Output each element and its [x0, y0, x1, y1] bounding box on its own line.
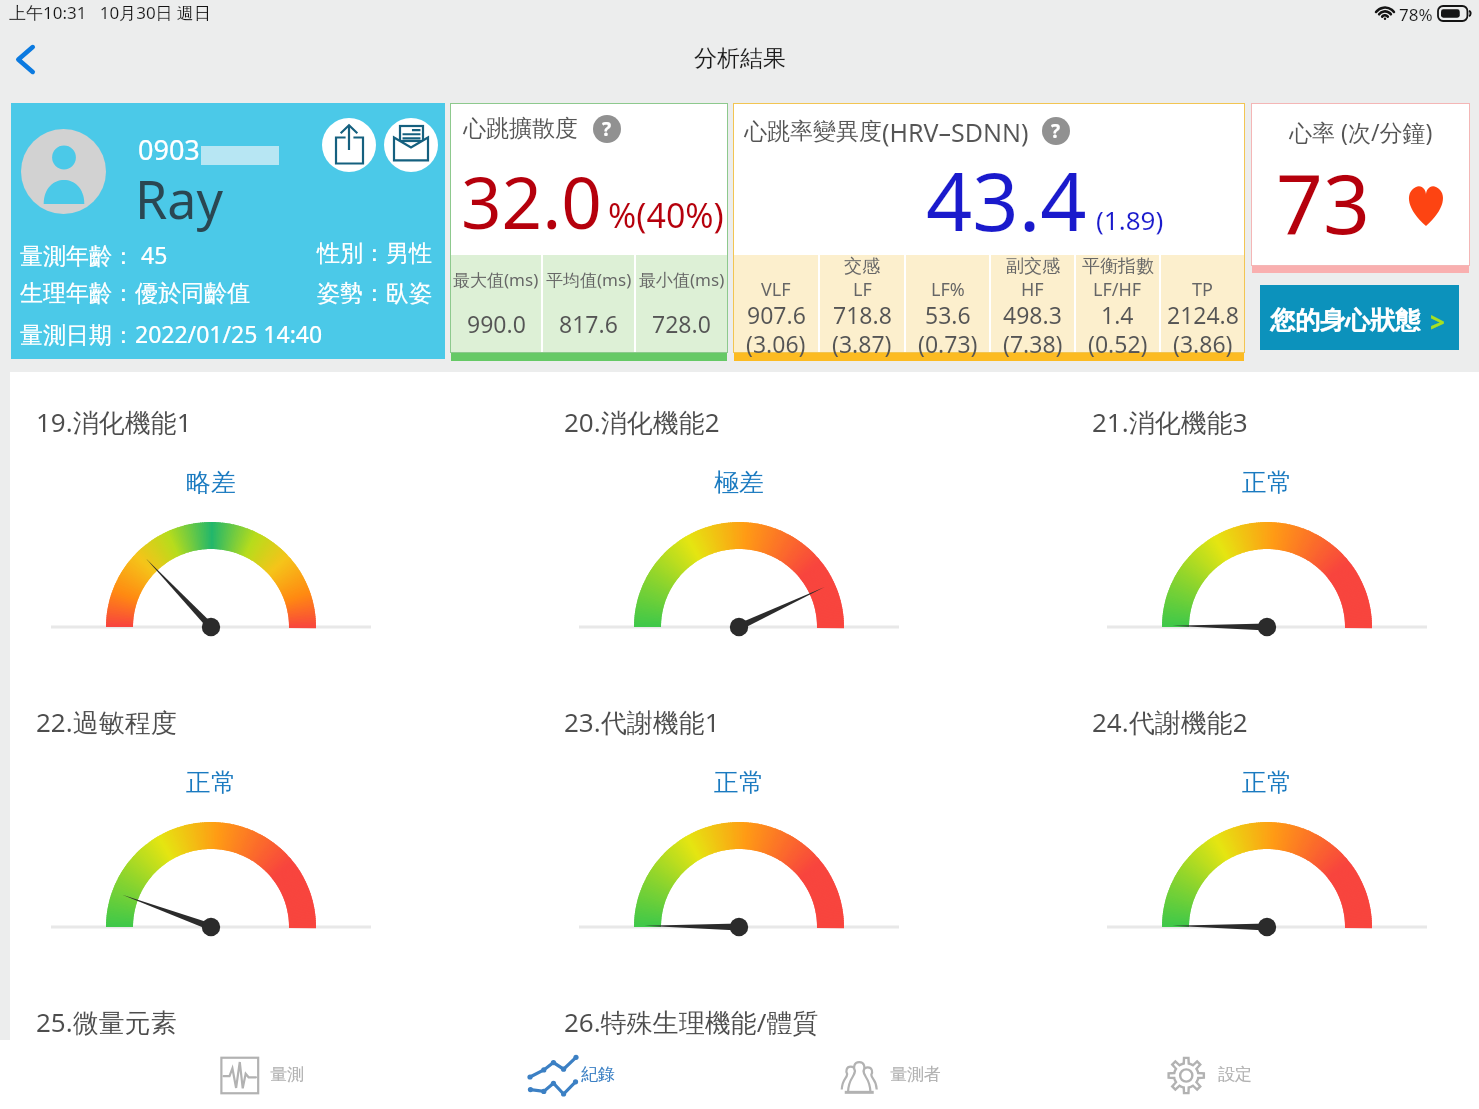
- button[interactable]: Help: [593, 115, 621, 143]
- staticText: 21.消化機能3: [1092, 404, 1248, 440]
- staticText: 990.0: [467, 308, 526, 339]
- staticText: 略差: [186, 467, 236, 498]
- button[interactable]: 24.代謝機能2: [1066, 672, 1479, 972]
- staticText: (1.89): [1096, 202, 1164, 237]
- staticText: 交感: [844, 255, 880, 278]
- staticText: 26.特殊生理機能/體質: [564, 1004, 819, 1040]
- staticText: 22.過敏程度: [36, 704, 177, 740]
- staticText: 性別：男性: [317, 239, 432, 268]
- staticText: 正常: [714, 767, 764, 798]
- staticText: (0.52): [1088, 328, 1148, 359]
- staticText: 1.4: [1101, 299, 1134, 330]
- staticText: >: [1430, 304, 1445, 339]
- staticText: 極差: [714, 467, 764, 498]
- staticText: 分析結果: [694, 44, 786, 73]
- button[interactable]: 20.消化機能2: [538, 372, 1066, 672]
- button[interactable]: 量測: [206, 1040, 319, 1109]
- staticText: LF/HF: [1093, 277, 1142, 302]
- button[interactable]: Email report: [384, 118, 438, 172]
- staticText: (3.87): [832, 328, 892, 359]
- staticText: 2124.8: [1167, 299, 1239, 330]
- staticText: (0.73): [918, 328, 978, 359]
- staticText: 24.代謝機能2: [1092, 704, 1248, 740]
- staticText: 正常: [1242, 767, 1292, 798]
- staticText: 最大值(ms): [453, 268, 539, 291]
- staticText: 73: [1276, 146, 1370, 258]
- staticText: 量測日期：2022/01/25 14:40: [20, 318, 323, 349]
- button[interactable]: 設定: [1152, 1040, 1267, 1109]
- staticText: 副交感: [1006, 255, 1060, 278]
- staticText: 心跳率變異度: [744, 117, 882, 146]
- button[interactable]: 量測者: [825, 1040, 956, 1109]
- staticText: VLF: [761, 277, 791, 302]
- staticText: 紀錄: [581, 1064, 615, 1085]
- staticText: Ray: [135, 163, 224, 234]
- staticText: 設定: [1218, 1064, 1252, 1085]
- staticText: 正常: [1242, 467, 1292, 498]
- staticText: 32.0: [461, 153, 602, 250]
- staticText: 43.4: [926, 144, 1087, 254]
- button[interactable]: 21.消化機能3: [1066, 372, 1479, 672]
- staticText: TP: [1192, 277, 1213, 302]
- staticText: 23.代謝機能1: [564, 704, 720, 740]
- staticText: 心跳擴散度: [463, 114, 578, 143]
- staticText: (3.86): [1173, 328, 1233, 359]
- staticText: 您的身心狀態: [1270, 305, 1420, 336]
- staticText: 0903: [138, 131, 200, 168]
- staticText: (HRV–SDNN): [882, 115, 1029, 149]
- button[interactable]: 紀錄: [516, 1040, 630, 1109]
- staticText: 心率 (次/分鐘): [1289, 116, 1433, 147]
- staticText: 817.6: [559, 308, 618, 339]
- staticText: 498.3: [1003, 299, 1062, 330]
- staticText: 907.6: [747, 299, 806, 330]
- staticText: 量測年齡： 45: [20, 239, 168, 270]
- staticText: HF: [1021, 277, 1044, 302]
- staticText: 平衡指數: [1082, 255, 1154, 278]
- staticText: 最小值(ms): [639, 268, 725, 291]
- staticText: 生理年齡：優於同齡值: [20, 279, 250, 308]
- staticText: 728.0: [652, 308, 711, 339]
- staticText: 20.消化機能2: [564, 404, 720, 440]
- staticText: 78%: [1399, 3, 1433, 26]
- button[interactable]: 19.消化機能1: [10, 372, 538, 672]
- staticText: (7.38): [1003, 328, 1063, 359]
- staticText: 量測者: [890, 1064, 941, 1085]
- staticText: LF: [853, 277, 872, 302]
- staticText: 正常: [186, 767, 236, 798]
- staticText: 718.8: [833, 299, 892, 330]
- staticText: 25.微量元素: [36, 1004, 177, 1040]
- button[interactable]: Share: [322, 118, 376, 172]
- staticText: (3.06): [746, 328, 806, 359]
- staticText: 姿勢：臥姿: [317, 279, 432, 308]
- staticText: %(40%): [608, 192, 724, 238]
- staticText: 平均值(ms): [546, 268, 632, 291]
- staticText: 上午10:31 10月30日 週日: [9, 1, 212, 24]
- button[interactable]: Back: [0, 30, 52, 103]
- staticText: 量測: [270, 1064, 304, 1085]
- button[interactable]: 23.代謝機能1: [538, 672, 1066, 972]
- button[interactable]: 您的身心狀態: [1260, 285, 1459, 350]
- staticText: 19.消化機能1: [36, 404, 192, 440]
- button[interactable]: Help: [1042, 117, 1070, 145]
- staticText: ?: [602, 116, 612, 142]
- button[interactable]: 22.過敏程度: [10, 672, 538, 972]
- staticText: LF%: [931, 277, 965, 302]
- staticText: ?: [1051, 118, 1061, 144]
- staticText: 53.6: [925, 299, 971, 330]
